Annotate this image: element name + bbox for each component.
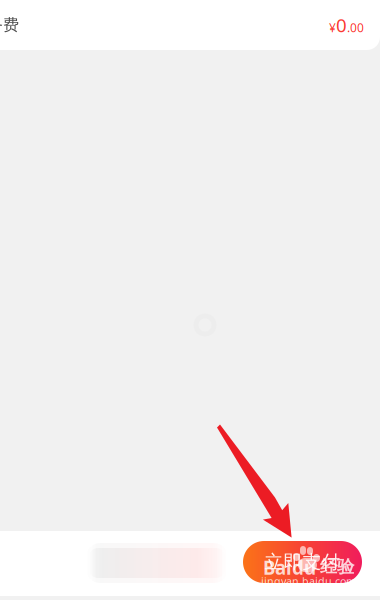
staticText: .00 bbox=[347, 20, 364, 35]
staticText: 务费 bbox=[0, 15, 19, 35]
button[interactable]: 立即支付 bbox=[243, 541, 362, 583]
staticText: 0 bbox=[336, 13, 347, 37]
staticText: ¥ bbox=[329, 20, 336, 35]
staticText: 立即支付 bbox=[264, 550, 340, 573]
staticText: Baidu bbox=[263, 555, 316, 580]
staticText: jingyan.baidu.com bbox=[261, 574, 356, 588]
staticText: 经验 bbox=[320, 556, 354, 577]
